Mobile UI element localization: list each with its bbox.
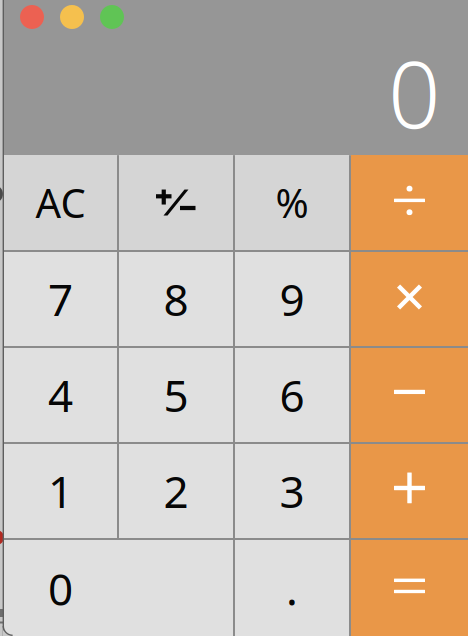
button[interactable]: Equals xyxy=(351,540,468,636)
button[interactable]: 2 xyxy=(119,444,233,538)
staticText: 0 xyxy=(388,31,441,154)
button[interactable]: Multiply xyxy=(351,252,468,346)
button[interactable]: 0 xyxy=(4,540,233,636)
button[interactable]: AC xyxy=(4,155,117,250)
staticText: 4 xyxy=(48,366,73,424)
button[interactable]: 6 xyxy=(235,348,349,442)
staticText: 1 xyxy=(48,462,73,520)
staticText: 9 xyxy=(279,270,304,328)
button[interactable]: Add xyxy=(351,444,468,538)
button[interactable]: Minimize window xyxy=(60,0,84,29)
button[interactable]: % xyxy=(235,155,349,250)
staticText: 6 xyxy=(279,366,304,424)
staticText: 3 xyxy=(279,462,304,520)
button[interactable]: . xyxy=(235,540,349,636)
staticText: 2 xyxy=(163,462,188,520)
button[interactable]: Zoom window xyxy=(100,0,124,29)
button[interactable]: 5 xyxy=(119,348,233,442)
staticText: 8 xyxy=(163,270,188,328)
staticText: 5 xyxy=(163,366,188,424)
staticText: AC xyxy=(35,176,85,229)
button[interactable]: 4 xyxy=(4,348,117,442)
button[interactable]: 9 xyxy=(235,252,349,346)
button[interactable]: Subtract xyxy=(351,348,468,442)
button[interactable]: 7 xyxy=(4,252,117,346)
staticText: % xyxy=(275,176,308,229)
button[interactable]: Close window xyxy=(20,0,44,29)
button[interactable]: Toggle sign xyxy=(119,155,233,250)
button[interactable]: 8 xyxy=(119,252,233,346)
staticText: . xyxy=(286,559,298,618)
staticText: 7 xyxy=(48,270,73,328)
button[interactable]: 3 xyxy=(235,444,349,538)
button[interactable]: 1 xyxy=(4,444,117,538)
button[interactable]: Divide xyxy=(351,155,468,250)
staticText: 0 xyxy=(48,559,73,618)
